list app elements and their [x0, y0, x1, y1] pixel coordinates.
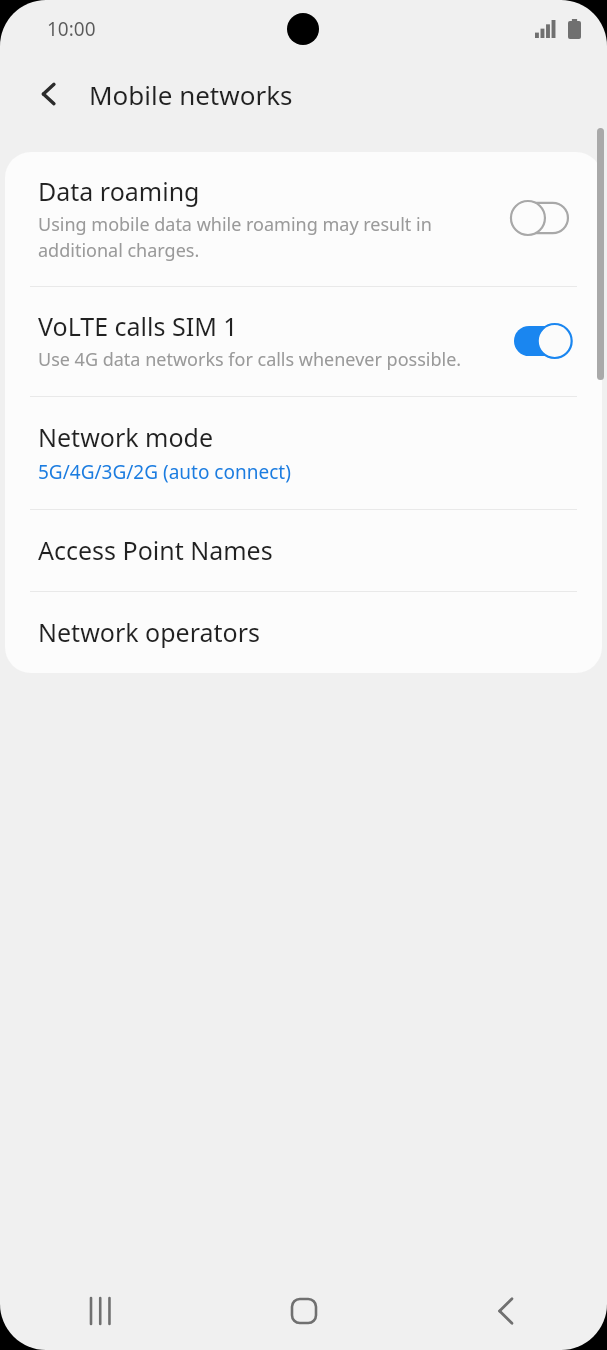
staticText: Mobile networks: [89, 77, 293, 112]
button[interactable]: Back: [405, 1272, 607, 1350]
button[interactable]: Home: [203, 1272, 405, 1350]
button[interactable]: VoLTE calls SIM 1 switch: [512, 321, 574, 361]
button[interactable]: Network operators: [5, 592, 602, 673]
button[interactable]: Data roaming: [5, 152, 602, 286]
staticText: Using mobile data while roaming may resu…: [38, 212, 496, 262]
staticText: 5G/4G/3G/2G (auto connect): [38, 459, 291, 485]
button[interactable]: Data roaming switch: [512, 198, 574, 238]
staticText: Use 4G data networks for calls whenever …: [38, 347, 462, 372]
staticText: 10:00: [47, 16, 96, 42]
staticText: VoLTE calls SIM 1: [38, 309, 238, 343]
button[interactable]: Access Point Names: [5, 510, 602, 591]
staticText: Data roaming: [38, 174, 200, 208]
staticText: Network mode: [38, 420, 214, 454]
button[interactable]: Back: [24, 68, 76, 120]
button[interactable]: Recents: [0, 1272, 203, 1350]
staticText: Network operators: [38, 615, 260, 649]
staticText: Access Point Names: [38, 533, 273, 567]
button[interactable]: Network mode: [5, 397, 602, 509]
button[interactable]: VoLTE calls SIM 1: [5, 287, 602, 396]
